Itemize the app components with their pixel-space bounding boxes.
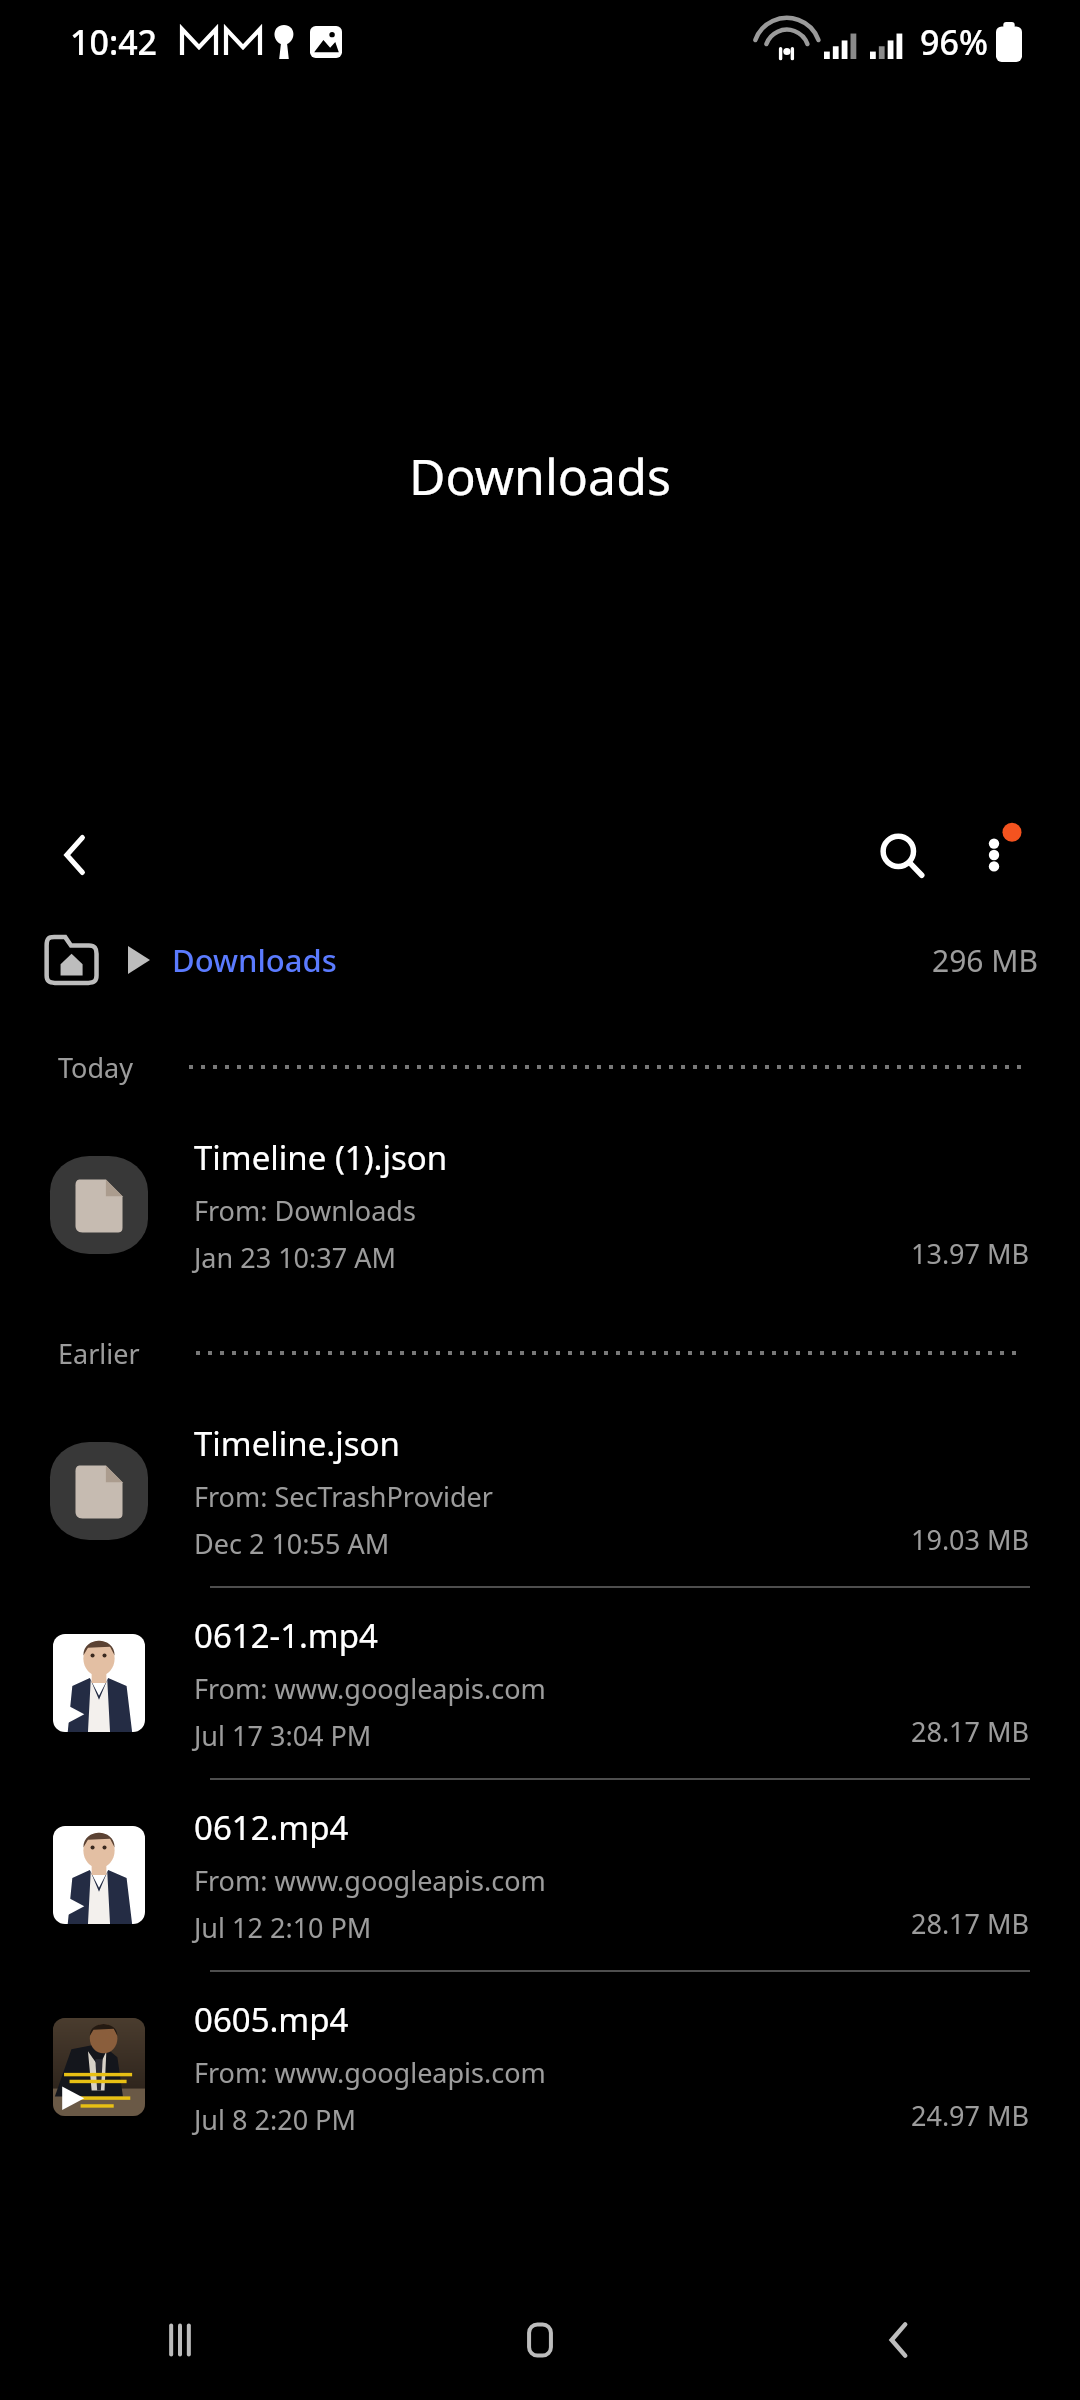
staticText: Today: [58, 1049, 133, 1086]
staticText: 24.97 MB: [911, 2097, 1030, 2134]
staticText: From: SecTrashProvider: [194, 1478, 493, 1515]
staticText: From: Downloads: [194, 1192, 416, 1229]
staticText: Jul 12 2:10 PM: [194, 1909, 372, 1946]
staticText: Jan 23 10:37 AM: [194, 1239, 396, 1276]
staticText: 19.03 MB: [911, 1521, 1030, 1558]
staticText: Downloads: [409, 442, 671, 510]
staticText: 28.17 MB: [911, 1713, 1030, 1750]
staticText: Timeline.json: [194, 1421, 400, 1466]
staticText: Downloads: [172, 939, 337, 981]
button[interactable]: 0612-1.mp4: [0, 1586, 1080, 1778]
staticText: 10:42: [70, 19, 158, 65]
staticText: 0605.mp4: [194, 1997, 349, 2042]
staticText: Jul 17 3:04 PM: [194, 1717, 372, 1754]
staticText: Dec 2 10:55 AM: [194, 1525, 390, 1562]
staticText: 28.17 MB: [911, 1905, 1030, 1942]
button[interactable]: Timeline (1).json: [0, 1110, 1080, 1300]
staticText: 13.97 MB: [911, 1235, 1030, 1272]
staticText: 296 MB: [932, 940, 1038, 981]
button[interactable]: More options: [946, 807, 1042, 903]
staticText: 0612.mp4: [194, 1805, 349, 1850]
button[interactable]: Back: [720, 2280, 1080, 2400]
button[interactable]: Back: [28, 807, 124, 903]
staticText: From: www.googleapis.com: [194, 2054, 546, 2091]
button[interactable]: Downloads: [0, 910, 1080, 1010]
button[interactable]: 0605.mp4: [0, 1970, 1080, 2162]
staticText: Timeline (1).json: [194, 1135, 448, 1180]
staticText: From: www.googleapis.com: [194, 1670, 546, 1707]
button[interactable]: Home: [360, 2280, 720, 2400]
staticText: From: www.googleapis.com: [194, 1862, 546, 1899]
staticText: Earlier: [58, 1335, 140, 1372]
staticText: Jul 8 2:20 PM: [194, 2101, 356, 2138]
staticText: 0612-1.mp4: [194, 1613, 378, 1658]
button[interactable]: Recents: [0, 2280, 360, 2400]
button[interactable]: 0612.mp4: [0, 1778, 1080, 1970]
button[interactable]: Search: [854, 807, 950, 903]
staticText: 96%: [920, 19, 988, 65]
button[interactable]: Timeline.json: [0, 1396, 1080, 1586]
